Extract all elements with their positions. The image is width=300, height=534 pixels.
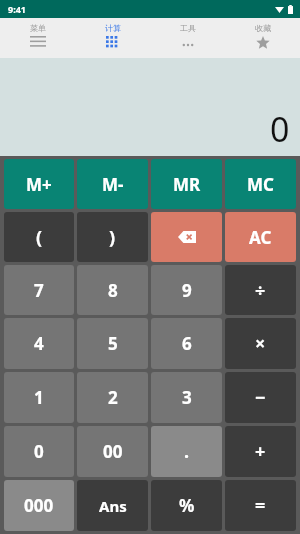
- button[interactable]: 菜单: [0, 18, 75, 58]
- staticText: .: [184, 439, 190, 464]
- button[interactable]: .: [151, 426, 222, 477]
- button[interactable]: +: [225, 426, 296, 477]
- staticText: 收藏: [255, 23, 271, 33]
- staticText: 4: [34, 332, 44, 355]
- staticText: ×: [255, 331, 266, 356]
- staticText: 5: [108, 332, 118, 355]
- staticText: 工具: [180, 23, 196, 33]
- staticText: %: [179, 494, 195, 517]
- button[interactable]: 8: [77, 265, 148, 315]
- staticText: MR: [173, 173, 201, 196]
- staticText: 计算: [105, 23, 121, 33]
- staticText: 00: [103, 440, 123, 463]
- button[interactable]: M+: [4, 159, 74, 209]
- button[interactable]: M-: [77, 159, 148, 209]
- staticText: 9:41: [8, 3, 26, 15]
- button[interactable]: AC: [225, 212, 296, 262]
- staticText: 2: [108, 386, 118, 409]
- button[interactable]: −: [225, 372, 296, 423]
- button[interactable]: (: [4, 212, 74, 262]
- button[interactable]: ): [77, 212, 148, 262]
- staticText: 0: [270, 106, 290, 152]
- staticText: MC: [247, 173, 274, 196]
- button[interactable]: %: [151, 480, 222, 531]
- staticText: 1: [34, 386, 44, 409]
- button[interactable]: 000: [4, 480, 74, 531]
- staticText: 0: [34, 440, 44, 463]
- button[interactable]: 2: [77, 372, 148, 423]
- staticText: M+: [26, 173, 52, 196]
- staticText: 菜单: [30, 23, 46, 33]
- staticText: 8: [108, 279, 118, 302]
- button[interactable]: =: [225, 480, 296, 531]
- staticText: 6: [182, 332, 192, 355]
- button[interactable]: ×: [225, 318, 296, 369]
- staticText: 3: [182, 386, 192, 409]
- staticText: ÷: [255, 278, 266, 303]
- button[interactable]: Delete: [151, 212, 222, 262]
- button[interactable]: ÷: [225, 265, 296, 315]
- staticText: ): [109, 225, 116, 250]
- button[interactable]: 4: [4, 318, 74, 369]
- button[interactable]: 收藏: [225, 18, 300, 58]
- button[interactable]: 0: [4, 426, 74, 477]
- staticText: Ans: [99, 496, 127, 516]
- button[interactable]: 1: [4, 372, 74, 423]
- button[interactable]: Ans: [77, 480, 148, 531]
- button[interactable]: 3: [151, 372, 222, 423]
- button[interactable]: 计算: [75, 18, 150, 58]
- staticText: =: [255, 493, 266, 518]
- staticText: 000: [24, 494, 54, 517]
- button[interactable]: 00: [77, 426, 148, 477]
- button[interactable]: MC: [225, 159, 296, 209]
- button[interactable]: 7: [4, 265, 74, 315]
- button[interactable]: 5: [77, 318, 148, 369]
- staticText: (: [36, 225, 43, 250]
- staticText: AC: [249, 226, 272, 249]
- button[interactable]: 6: [151, 318, 222, 369]
- button[interactable]: MR: [151, 159, 222, 209]
- button[interactable]: 9: [151, 265, 222, 315]
- staticText: +: [255, 439, 266, 464]
- staticText: 9: [182, 279, 192, 302]
- button[interactable]: 工具: [150, 18, 225, 58]
- staticText: 7: [34, 279, 44, 302]
- staticText: −: [255, 385, 266, 410]
- staticText: M-: [102, 173, 124, 196]
